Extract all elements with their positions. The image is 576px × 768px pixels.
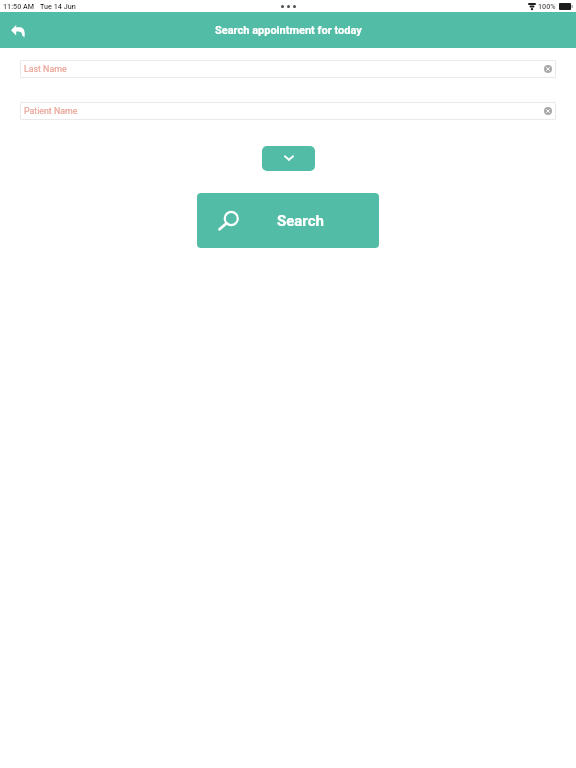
staticText: Search bbox=[277, 212, 324, 230]
button[interactable]: Clear Patient Name bbox=[544, 107, 552, 115]
button[interactable]: Patient Name bbox=[20, 102, 556, 120]
staticText: 11:50 AM bbox=[3, 2, 35, 10]
button[interactable]: Clear Last Name bbox=[544, 65, 552, 73]
button[interactable]: Search bbox=[197, 193, 379, 248]
staticText: Last Name bbox=[24, 64, 67, 74]
staticText: Tue 14 Jun bbox=[40, 2, 76, 10]
button[interactable]: Last Name bbox=[20, 60, 556, 78]
staticText: 100% bbox=[538, 2, 556, 10]
button[interactable]: Back bbox=[4, 16, 32, 44]
staticText: Search appointment for today bbox=[215, 24, 362, 37]
staticText: Patient Name bbox=[24, 106, 78, 116]
button[interactable]: Expand options bbox=[262, 146, 315, 171]
